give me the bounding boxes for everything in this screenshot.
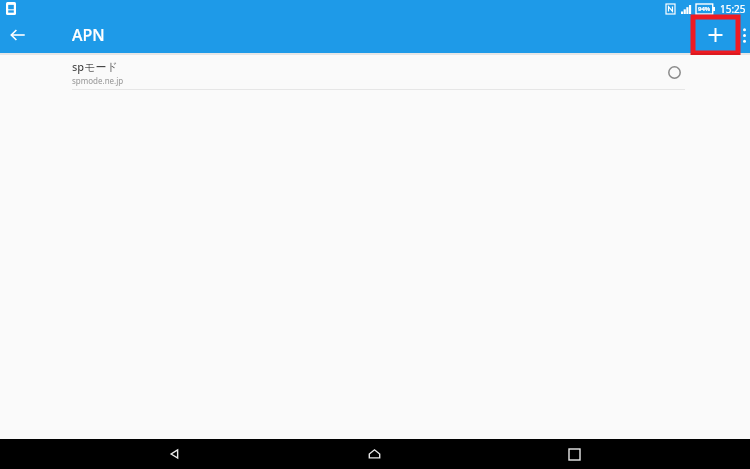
button[interactable]: Back <box>0 17 36 53</box>
staticText: spモード <box>72 59 118 74</box>
staticText: spmode.ne.jp <box>72 75 124 86</box>
button[interactable]: More options <box>738 17 750 53</box>
button[interactable]: spモード <box>0 55 750 89</box>
staticText: APN <box>72 24 105 46</box>
button[interactable]: Add APN <box>693 17 738 53</box>
staticText: 15:25 <box>720 2 746 16</box>
staticText: 94% <box>698 5 711 13</box>
button[interactable]: Home <box>350 439 398 469</box>
button[interactable]: Recent apps <box>550 439 598 469</box>
button[interactable]: Back <box>151 439 199 469</box>
